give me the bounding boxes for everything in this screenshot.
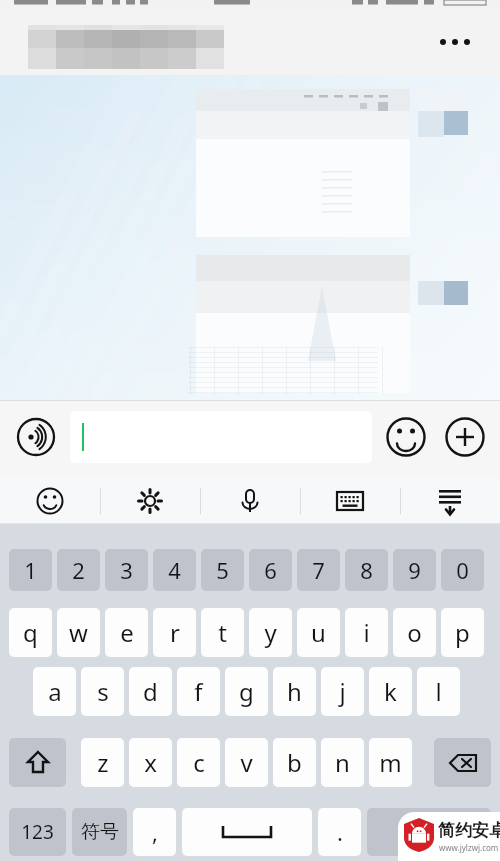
button[interactable]: b (273, 738, 316, 787)
staticText: j (339, 675, 346, 708)
button[interactable]: f (177, 667, 220, 716)
button[interactable]: More options (430, 22, 480, 62)
button[interactable]: k (369, 667, 412, 716)
staticText: u (311, 616, 326, 649)
button[interactable]: 8 (345, 549, 388, 591)
staticText: 2 (72, 555, 85, 585)
staticText: a (48, 675, 62, 708)
button[interactable]: z (81, 738, 124, 787)
button[interactable]: Enter (367, 808, 491, 856)
staticText: v (240, 746, 253, 779)
staticText: k (384, 675, 397, 708)
staticText: 5 (216, 555, 229, 585)
staticText: 0 (456, 555, 469, 585)
button[interactable]: , (133, 808, 176, 856)
button[interactable]: 1 (9, 549, 52, 591)
button[interactable]: Keyboard (315, 482, 385, 520)
button[interactable]: Emoji (385, 416, 427, 458)
button[interactable]: j (321, 667, 364, 716)
staticText: 简约安卓网 (438, 820, 500, 841)
button[interactable]: m (369, 738, 412, 787)
button[interactable]: 5 (201, 549, 244, 591)
button[interactable]: e (105, 608, 148, 657)
staticText: q (23, 616, 38, 649)
staticText: g (239, 675, 254, 708)
button[interactable]: h (273, 667, 316, 716)
button[interactable]: g (225, 667, 268, 716)
button[interactable] (70, 411, 372, 463)
button[interactable]: 7 (297, 549, 340, 591)
staticText: p (455, 616, 470, 649)
staticText: n (335, 746, 350, 779)
button[interactable]: More functions (444, 416, 486, 458)
button[interactable]: Shift (9, 738, 66, 787)
staticText: w (69, 616, 88, 649)
button[interactable]: Emoji panel (15, 482, 85, 520)
staticText: 123 (21, 819, 54, 845)
button[interactable]: Hide keyboard (415, 482, 485, 520)
button[interactable]: d (129, 667, 172, 716)
button[interactable]: i (345, 608, 388, 657)
button[interactable]: t (201, 608, 244, 657)
staticText: f (194, 675, 203, 708)
staticText: z (97, 746, 109, 779)
staticText: e (120, 616, 134, 649)
staticText: www.jylzwj.com (439, 842, 499, 853)
button[interactable]: c (177, 738, 220, 787)
staticText: o (407, 616, 422, 649)
staticText: 9 (408, 555, 421, 585)
button[interactable]: Voice input (15, 416, 57, 458)
staticText: 4 (168, 555, 181, 585)
button[interactable]: 9 (393, 549, 436, 591)
button[interactable]: o (393, 608, 436, 657)
button[interactable]: x (129, 738, 172, 787)
staticText: x (144, 746, 157, 779)
button[interactable]: Backspace (434, 738, 491, 787)
staticText: y (264, 616, 277, 649)
button[interactable]: 2 (57, 549, 100, 591)
staticText: 符号 (81, 820, 119, 844)
button[interactable]: s (81, 667, 124, 716)
staticText: 6 (264, 555, 277, 585)
button[interactable]: Voice (215, 482, 285, 520)
button[interactable]: 4 (153, 549, 196, 591)
staticText: s (97, 675, 109, 708)
staticText: b (287, 746, 302, 779)
staticText: m (379, 746, 402, 779)
staticText: t (218, 616, 227, 649)
staticText: l (435, 675, 442, 708)
button[interactable]: w (57, 608, 100, 657)
button[interactable]: l (417, 667, 460, 716)
button[interactable]: v (225, 738, 268, 787)
staticText: i (363, 616, 370, 649)
staticText: , (152, 817, 158, 847)
button[interactable]: q (9, 608, 52, 657)
button[interactable]: 6 (249, 549, 292, 591)
staticText: 1 (24, 555, 37, 585)
button[interactable]: y (249, 608, 292, 657)
button[interactable]: n (321, 738, 364, 787)
button[interactable]: 0 (441, 549, 484, 591)
staticText: c (193, 746, 205, 779)
button[interactable]: p (441, 608, 484, 657)
button[interactable]: Space (182, 808, 312, 856)
staticText: . (337, 817, 343, 847)
button[interactable]: 3 (105, 549, 148, 591)
button[interactable]: . (318, 808, 361, 856)
button[interactable]: 123 (9, 808, 66, 856)
staticText: h (287, 675, 302, 708)
staticText: d (143, 675, 158, 708)
button[interactable]: 符号 (72, 808, 127, 856)
staticText: 7 (312, 555, 325, 585)
button[interactable]: r (153, 608, 196, 657)
staticText: 8 (360, 555, 373, 585)
staticText: r (170, 616, 180, 649)
button[interactable]: a (33, 667, 76, 716)
staticText: 3 (120, 555, 133, 585)
button[interactable]: Settings (115, 482, 185, 520)
button[interactable]: u (297, 608, 340, 657)
